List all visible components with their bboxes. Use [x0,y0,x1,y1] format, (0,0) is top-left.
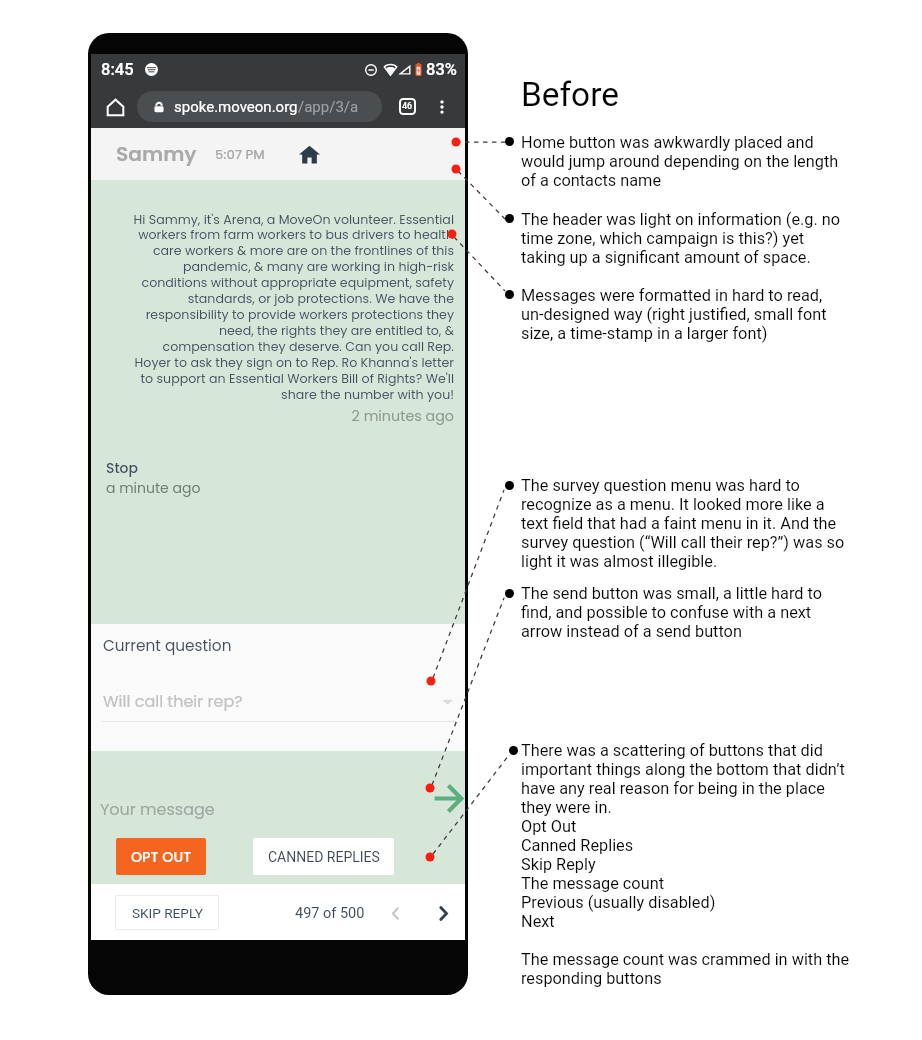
staticText: The survey question menu was hard to [521,476,800,495]
button[interactable]: Will call their rep? [103,690,453,712]
button[interactable]: Send [434,785,464,815]
button[interactable]: Previous [382,900,408,926]
staticText: taking up a significant amount of space. [521,248,811,267]
button[interactable]: Home [293,138,325,170]
staticText: 46 [402,101,413,112]
staticText: size, a time-stamp in a larger font) [521,324,768,343]
staticText: Your message [100,798,215,820]
button[interactable]: Home [100,92,130,122]
staticText: would jump around depending on the lengt… [521,152,839,171]
staticText: of a contacts name [521,171,662,190]
staticText: Stop [106,458,138,477]
staticText: find, and possible to confuse with a nex… [521,603,812,622]
staticText: Will call their rep? [103,690,243,712]
staticText: OPT OUT [131,847,192,867]
staticText: Current question [103,635,232,656]
staticText: 497 of 500 [295,905,365,922]
staticText: /app/3/a [298,98,359,116]
staticText: Sammy [116,140,197,168]
staticText: 8:45 [101,60,134,79]
button[interactable]: SKIP REPLY [115,895,219,930]
staticText: 5:07 PM [215,145,265,163]
button[interactable]: More options [431,96,453,118]
staticText: Hi Sammy, it's Arena, a MoveOn volunteer… [126,211,454,404]
staticText: Opt Out [521,817,577,836]
staticText: The send button was small, a little hard… [521,584,823,603]
staticText: a minute ago [106,478,201,498]
button[interactable]: CANNED REPLIES [253,838,394,875]
staticText: Messages were formatted in hard to read, [521,286,823,305]
staticText: CANNED REPLIES [268,849,380,865]
staticText: There was a scattering of buttons that d… [521,741,823,760]
staticText: Home button was awkwardly placed and [521,133,814,152]
button[interactable]: Tabs [399,98,416,115]
staticText: time zone, which campaign is this?) yet [521,229,805,248]
staticText: Previous (usually disabled) [521,893,716,912]
staticText: have any real reason for being in the pl… [521,779,825,798]
button[interactable]: OPT OUT [116,838,206,875]
staticText: text field that had a faint menu in it. … [521,514,837,533]
staticText: survey question (“Will call their rep?”)… [521,533,845,552]
staticText: spoke.moveon.org [174,98,298,116]
staticText: recognize as a menu. It looked more like… [521,495,825,514]
staticText: The message count was crammed in with th… [521,950,850,969]
staticText: arrow instead of a send button [521,622,742,641]
staticText: un-designed way (right justified, small … [521,305,827,324]
staticText: SKIP REPLY [132,905,203,921]
staticText: light it was almost illegible. [521,552,718,571]
staticText: Next [521,912,555,931]
staticText: important things along the bottom that d… [521,760,845,779]
staticText: 2 minutes ago [126,406,454,426]
staticText: Before [521,75,619,114]
button[interactable]: Next [428,898,458,928]
button[interactable]: spoke.moveon.org [137,91,382,122]
staticText: 83% [426,60,457,79]
staticText: Canned Replies [521,836,634,855]
staticText: The message count [521,874,664,893]
staticText: The header was light on information (e.g… [521,210,841,229]
staticText: they were in. [521,798,612,817]
staticText: responding buttons [521,969,662,988]
staticText: Skip Reply [521,855,596,874]
